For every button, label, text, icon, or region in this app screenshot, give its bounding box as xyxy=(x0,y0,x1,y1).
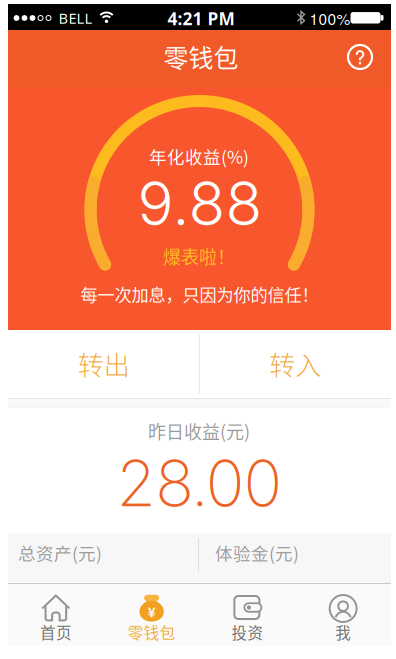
button[interactable]: 转入 xyxy=(199,330,391,398)
staticText: 我 xyxy=(335,621,351,643)
button[interactable]: 投资 xyxy=(200,584,295,646)
staticText: 首页 xyxy=(40,621,72,643)
button[interactable]: 转出 xyxy=(8,330,199,398)
staticText: 28.00 xyxy=(116,444,283,522)
button[interactable]: 我 xyxy=(296,584,391,646)
button[interactable]: 总资产(元) xyxy=(18,528,199,576)
staticText: 昨日收益(元) xyxy=(148,418,250,444)
staticText: 体验金(元) xyxy=(215,540,299,565)
staticText: 投资 xyxy=(231,621,263,643)
staticText: 年化收益(%) xyxy=(149,143,249,169)
staticText: 转出 xyxy=(78,345,130,383)
staticText: 零钱包 xyxy=(128,621,176,643)
staticText: 4:21 PM xyxy=(167,7,234,30)
staticText: ¥ xyxy=(148,602,156,621)
staticText: 爆表啦！ xyxy=(163,243,235,269)
button[interactable]: 首页 xyxy=(8,584,103,646)
staticText: 100% xyxy=(309,7,350,29)
staticText: 转入 xyxy=(269,345,321,383)
staticText: 9.88 xyxy=(137,167,262,240)
button[interactable]: ¥ xyxy=(104,584,199,646)
staticText: 零钱包 xyxy=(163,38,238,75)
staticText: 每一次加息，只因为你的信任！ xyxy=(80,281,318,306)
staticText: BELL xyxy=(58,8,92,28)
staticText: 总资产(元) xyxy=(18,540,102,565)
button[interactable]: 体验金(元) xyxy=(215,528,391,576)
button[interactable]: Help xyxy=(340,37,380,77)
